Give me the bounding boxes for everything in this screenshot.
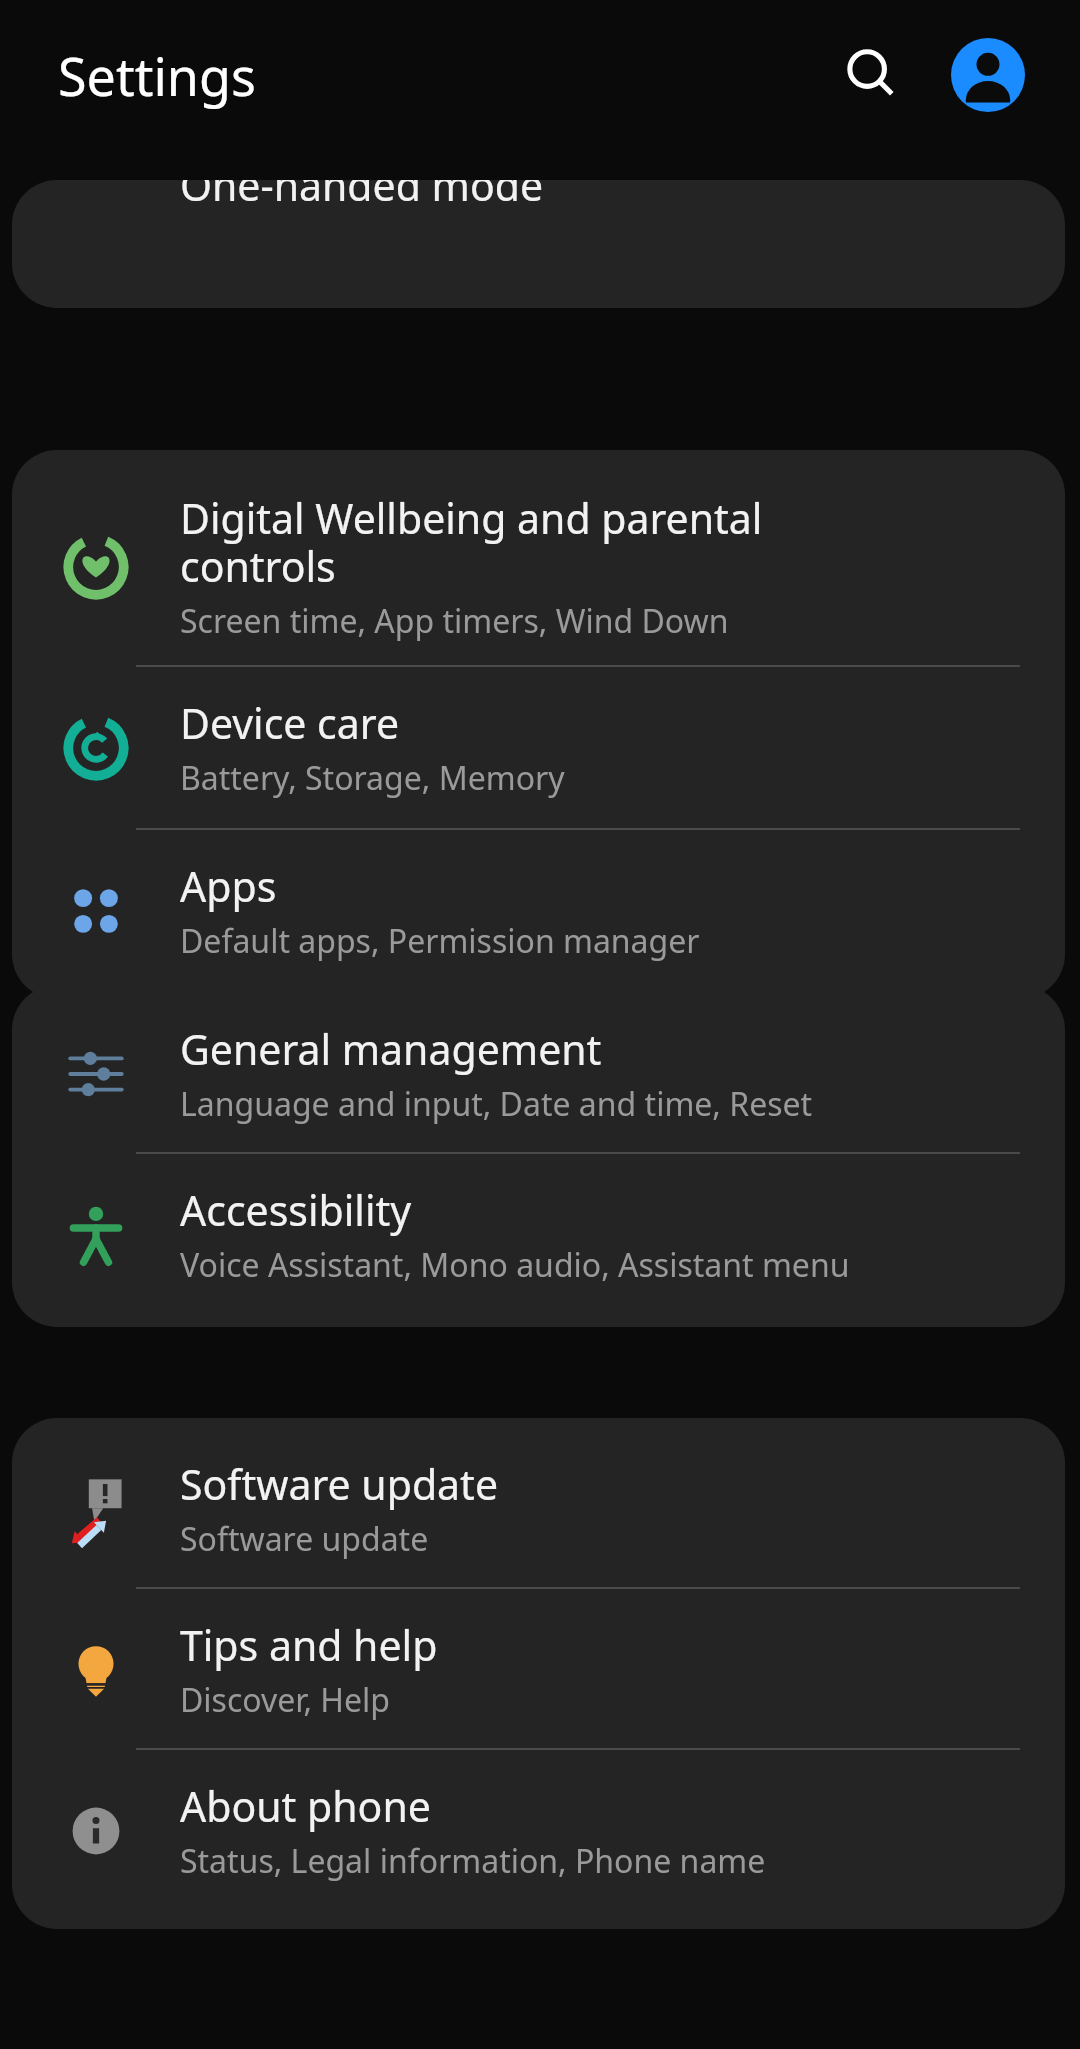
button[interactable]: Device care [12, 667, 1065, 828]
button[interactable]: Account [940, 27, 1036, 123]
staticText: Battery, Storage, Memory [180, 756, 565, 800]
staticText: Status, Legal information, Phone name [180, 1839, 766, 1883]
staticText: Language and input, Date and time, Reset [180, 1082, 813, 1126]
button[interactable]: Digital Wellbeing and parental controls [12, 450, 1065, 665]
button[interactable]: Accessibility [12, 1154, 1065, 1327]
button[interactable]: About phone [12, 1750, 1065, 1929]
button[interactable]: Apps [12, 830, 1065, 999]
staticText: About phone [180, 1778, 431, 1834]
staticText: Software update [180, 1517, 429, 1561]
staticText: Accessibility [180, 1182, 412, 1238]
button[interactable]: Search [824, 27, 920, 123]
staticText: One-handed mode [180, 180, 544, 213]
button[interactable]: Software update [12, 1418, 1065, 1587]
staticText: Screen time, App timers, Wind Down [180, 599, 729, 643]
button[interactable]: Tips and help [12, 1589, 1065, 1748]
staticText: Discover, Help [180, 1678, 391, 1722]
staticText: Software update [180, 1456, 499, 1512]
button[interactable]: General management [12, 985, 1065, 1152]
staticText: General management [180, 1021, 602, 1077]
staticText: Settings [58, 40, 256, 111]
staticText: Apps [180, 858, 277, 914]
staticText: Digital Wellbeing and parental controls [180, 490, 763, 594]
staticText: Voice Assistant, Mono audio, Assistant m… [180, 1243, 850, 1287]
staticText: Device care [180, 695, 400, 751]
button[interactable]: One-handed mode [12, 180, 1065, 308]
staticText: Default apps, Permission manager [180, 919, 700, 963]
staticText: Tips and help [180, 1617, 438, 1673]
